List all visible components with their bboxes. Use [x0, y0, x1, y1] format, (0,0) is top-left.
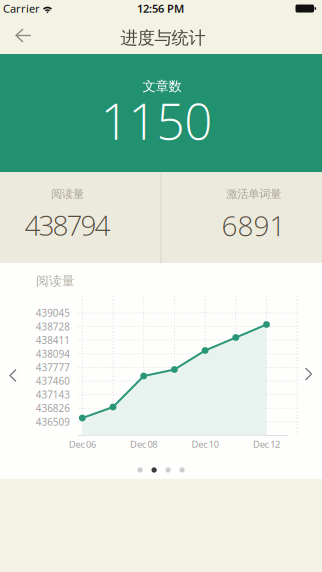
button[interactable] [0, 20, 44, 54]
staticText: 437143 [36, 388, 70, 401]
staticText: 439045 [36, 306, 70, 319]
staticText: 438094 [36, 347, 70, 360]
button[interactable] [133, 463, 189, 477]
staticText: Dec 12 [253, 438, 280, 450]
staticText: 436509 [36, 415, 70, 428]
staticText: Carrier [3, 1, 40, 16]
staticText: 阅读量 [51, 187, 84, 201]
staticText: 文章数 [142, 78, 181, 94]
staticText: 437777 [36, 361, 70, 374]
staticText: 438728 [36, 320, 70, 333]
button[interactable] [296, 361, 321, 386]
staticText: 12:56 PM [137, 1, 184, 16]
staticText: 436826 [36, 402, 70, 415]
staticText: 6891 [221, 207, 285, 244]
staticText: 437460 [36, 374, 70, 387]
staticText: 438411 [36, 334, 70, 347]
staticText: Dec 10 [191, 438, 219, 450]
staticText: Dec 08 [130, 438, 157, 450]
staticText: 阅读量 [36, 273, 75, 289]
button[interactable] [0, 363, 25, 388]
staticText: 进度与统计 [120, 27, 205, 49]
staticText: 激活单词量 [226, 187, 281, 201]
staticText: Dec 06 [69, 438, 96, 450]
staticText: 1150 [101, 88, 212, 153]
staticText: 438794 [24, 206, 110, 244]
